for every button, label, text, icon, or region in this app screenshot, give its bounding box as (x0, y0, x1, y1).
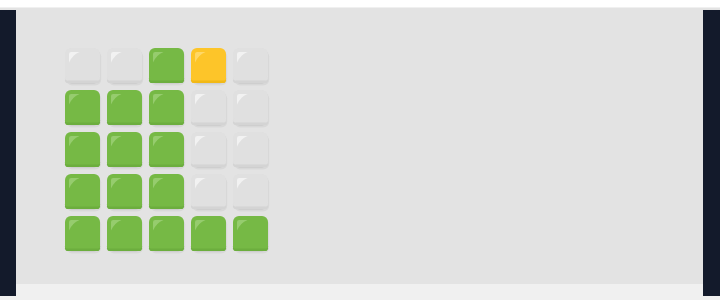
button[interactable]: Grid cell (107, 132, 142, 167)
button[interactable]: Grid cell (233, 174, 268, 209)
button[interactable]: Grid cell (233, 216, 268, 251)
button[interactable]: Grid cell (65, 132, 100, 167)
button[interactable]: Grid cell (65, 174, 100, 209)
button[interactable]: Grid cell (233, 132, 268, 167)
button[interactable]: Grid cell (107, 216, 142, 251)
button[interactable]: Grid cell (65, 216, 100, 251)
button[interactable]: Grid cell (149, 132, 184, 167)
button[interactable]: Grid cell (191, 174, 226, 209)
button[interactable]: Grid cell (149, 90, 184, 125)
button[interactable]: Grid cell (233, 90, 268, 125)
button[interactable]: Grid cell (149, 48, 184, 83)
button[interactable]: Grid cell (233, 48, 268, 83)
button[interactable]: Grid cell (191, 48, 226, 83)
button[interactable]: Grid cell (65, 48, 100, 83)
button[interactable]: Grid cell (107, 174, 142, 209)
button[interactable]: Grid cell (149, 174, 184, 209)
button[interactable]: Grid cell (65, 90, 100, 125)
button[interactable]: Grid cell (107, 90, 142, 125)
button[interactable]: Grid cell (191, 132, 226, 167)
button[interactable]: Grid cell (191, 90, 226, 125)
button[interactable]: Grid cell (149, 216, 184, 251)
button[interactable]: Grid cell (107, 48, 142, 83)
button[interactable]: Grid cell (191, 216, 226, 251)
